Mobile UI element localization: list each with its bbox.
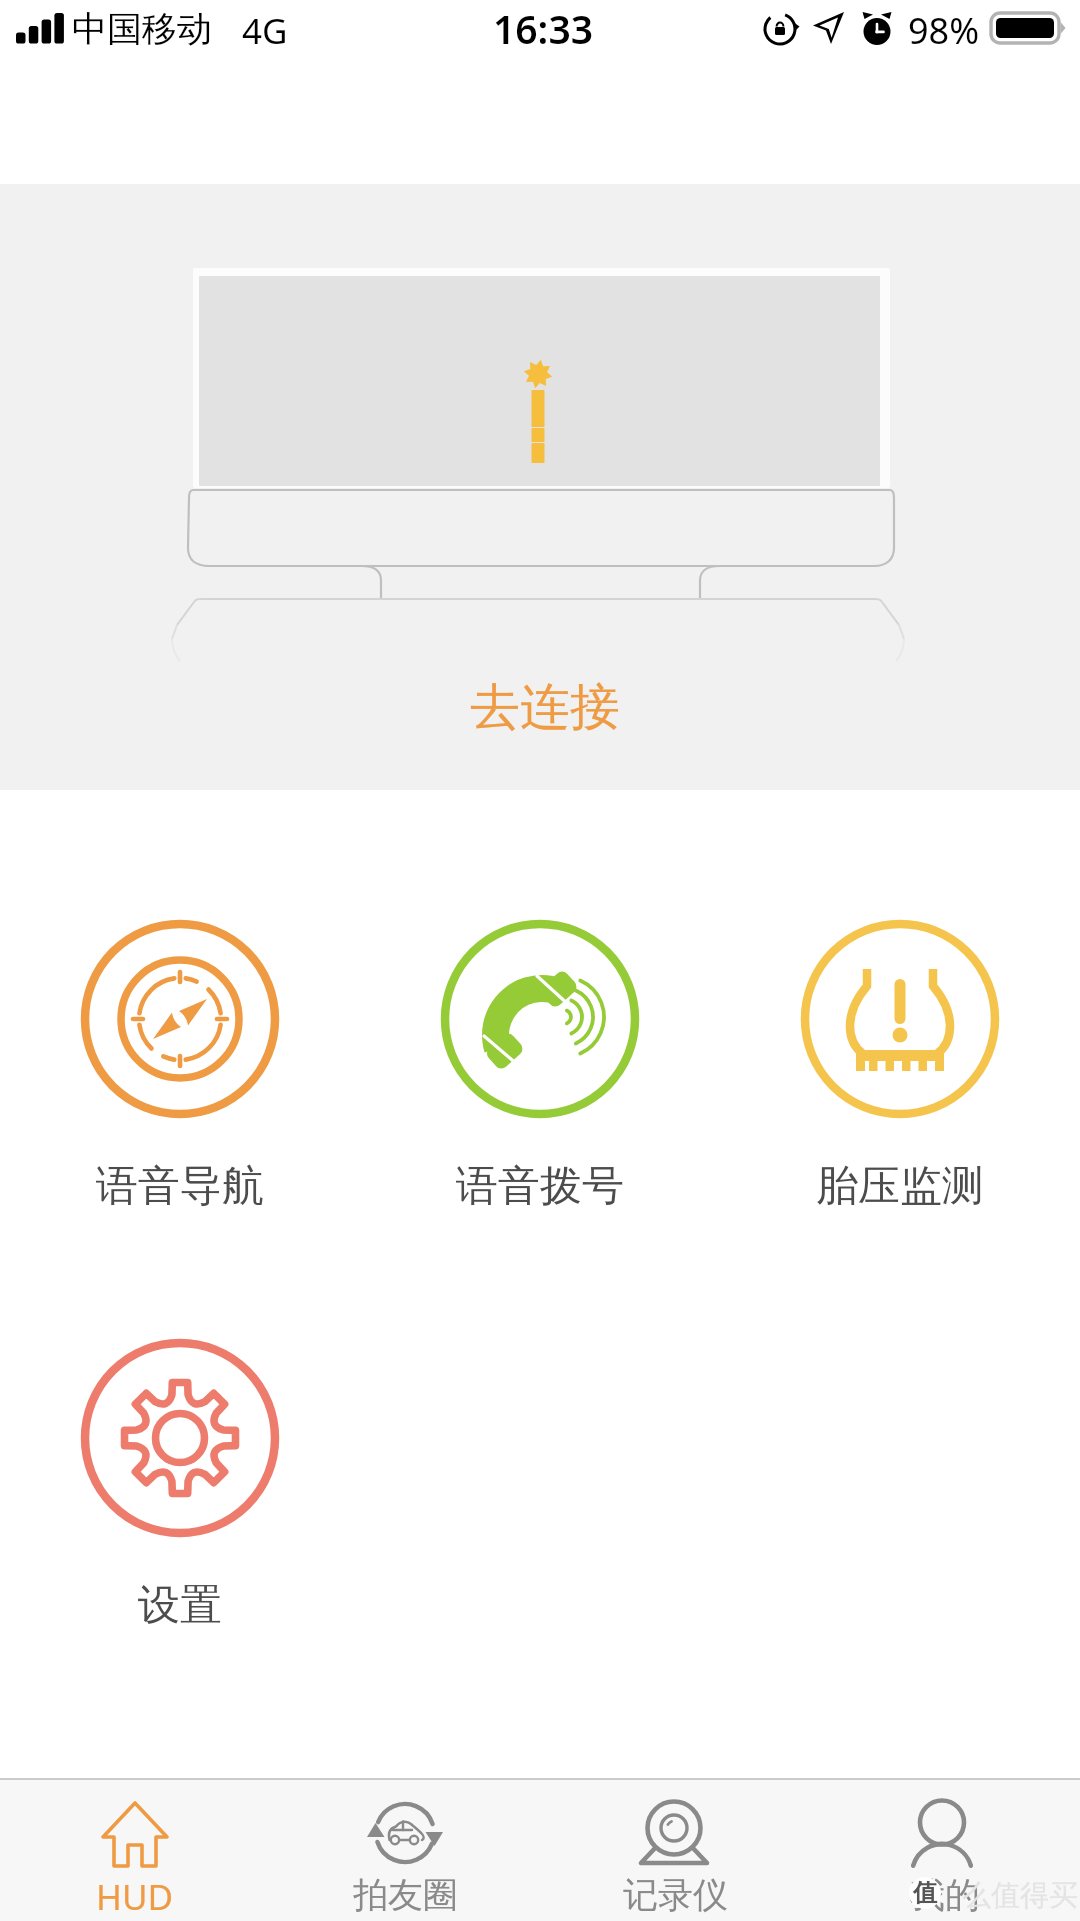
staticText: 4G	[242, 7, 288, 55]
staticText: 我的	[910, 1873, 980, 1917]
button[interactable]: 胎压监测	[720, 904, 1080, 1213]
button[interactable]: 去连接	[462, 670, 628, 745]
button[interactable]: 语音导航	[0, 904, 360, 1213]
button[interactable]: 语音拨号	[360, 904, 720, 1213]
button[interactable]: HUD	[0, 1780, 270, 1921]
staticText: 拍友圈	[353, 1873, 458, 1917]
staticText: 记录仪	[623, 1873, 728, 1917]
staticText: 胎压监测	[816, 1160, 984, 1213]
staticText: 语音拨号	[456, 1160, 624, 1213]
staticText: 去连接	[470, 676, 620, 739]
staticText: 么值得买	[962, 1877, 1078, 1914]
button[interactable]: 拍友圈	[270, 1780, 540, 1921]
staticText: 值	[913, 1878, 937, 1908]
button[interactable]: 我的	[810, 1780, 1080, 1921]
button[interactable]: 设置	[0, 1323, 360, 1632]
button[interactable]: 记录仪	[540, 1780, 810, 1921]
staticText: HUD	[96, 1873, 174, 1921]
staticText: 语音导航	[96, 1160, 264, 1213]
staticText: 中国移动	[72, 7, 212, 51]
staticText: 16:33	[493, 2, 593, 55]
staticText: 设置	[138, 1579, 222, 1632]
staticText: 98%	[908, 6, 980, 55]
